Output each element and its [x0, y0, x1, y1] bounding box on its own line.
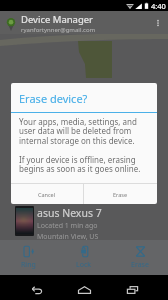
staticText: Erase device? — [19, 91, 88, 106]
staticText: If your device is offline, erasing begin… — [19, 154, 147, 175]
staticText: Your apps, media, settings, and user dat… — [19, 116, 147, 147]
button[interactable]: Lock — [56, 245, 112, 270]
button[interactable]: Ring — [0, 245, 56, 270]
staticText: Erase — [113, 191, 128, 198]
staticText: Mountain View, US — [37, 232, 99, 242]
staticText: asus Nexus 7 — [37, 206, 102, 220]
button[interactable]: Back — [24, 278, 48, 300]
staticText: Cancel — [38, 191, 56, 198]
staticText: 4:40 — [151, 1, 166, 11]
button[interactable]: Erase — [84, 184, 157, 204]
staticText: Erase — [131, 260, 149, 270]
button[interactable]: Home — [72, 278, 96, 300]
staticText: Lock — [76, 260, 92, 270]
staticText: Device Manager — [21, 13, 94, 26]
staticText: Ring — [21, 260, 36, 270]
staticText: ryanfortynner@gmail.com — [21, 26, 96, 34]
button[interactable]: Cancel — [11, 184, 83, 204]
button[interactable]: Recents — [120, 278, 144, 300]
button[interactable]: More options — [150, 15, 166, 31]
button[interactable]: Erase — [112, 245, 168, 270]
staticText: Located 1 min ago — [37, 221, 98, 231]
